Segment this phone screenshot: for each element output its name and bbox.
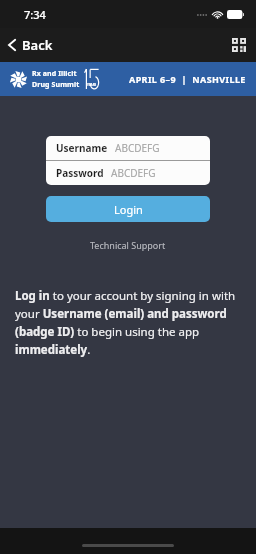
button[interactable]: Username xyxy=(46,136,210,160)
button[interactable]: Back xyxy=(0,28,63,62)
button[interactable]: Technical Support xyxy=(80,236,176,254)
staticText: Back xyxy=(22,36,53,54)
staticText: Password xyxy=(56,166,104,180)
staticText: Drug Summit xyxy=(32,80,80,90)
staticText: Login xyxy=(114,202,143,217)
staticText: ABCDEFG xyxy=(115,141,160,155)
staticText: YEARS xyxy=(87,83,97,87)
button[interactable]: Login xyxy=(46,196,210,222)
staticText: Username xyxy=(56,141,108,155)
staticText: Technical Support xyxy=(90,239,166,251)
button[interactable]: Scan QR code xyxy=(222,28,256,62)
staticText: ABCDEFG xyxy=(111,166,156,180)
button[interactable]: Password xyxy=(46,161,210,185)
staticText: Log in to your account by signing in wit… xyxy=(15,288,241,357)
staticText: 7:34 xyxy=(24,7,46,22)
staticText: APRIL 6–9 | NASHVILLE xyxy=(129,73,246,85)
staticText: Rx and Illicit xyxy=(32,69,77,79)
